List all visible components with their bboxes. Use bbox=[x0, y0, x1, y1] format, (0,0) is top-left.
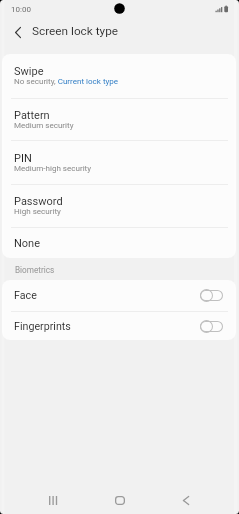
staticText: PIN bbox=[14, 152, 32, 165]
staticText: Screen lock type bbox=[32, 24, 119, 38]
button[interactable]: None bbox=[2, 228, 236, 258]
staticText: Medium-high security bbox=[14, 164, 92, 173]
button[interactable]: Password bbox=[2, 185, 236, 227]
staticText: Fingerprints bbox=[14, 320, 71, 333]
button[interactable]: Home bbox=[104, 486, 136, 514]
staticText: Face bbox=[14, 289, 37, 302]
staticText: 10:00 bbox=[11, 5, 31, 14]
staticText: Biometrics bbox=[15, 265, 55, 275]
button[interactable]: Fingerprints bbox=[2, 312, 236, 340]
staticText: High security bbox=[14, 207, 61, 216]
staticText: Pattern bbox=[14, 109, 50, 122]
button[interactable]: Navigate up bbox=[9, 23, 27, 41]
button[interactable]: Swipe bbox=[2, 54, 236, 98]
staticText: No security, Current lock type bbox=[14, 77, 119, 86]
staticText: None bbox=[14, 237, 41, 250]
button[interactable]: Back bbox=[170, 486, 202, 514]
button[interactable]: Face bbox=[2, 280, 236, 311]
staticText: Medium security bbox=[14, 121, 74, 130]
staticText: Swipe bbox=[14, 65, 44, 78]
staticText: Password bbox=[14, 195, 63, 208]
button[interactable]: Pattern bbox=[2, 99, 236, 140]
button[interactable]: PIN bbox=[2, 141, 236, 184]
button[interactable]: Recent apps bbox=[37, 486, 69, 514]
